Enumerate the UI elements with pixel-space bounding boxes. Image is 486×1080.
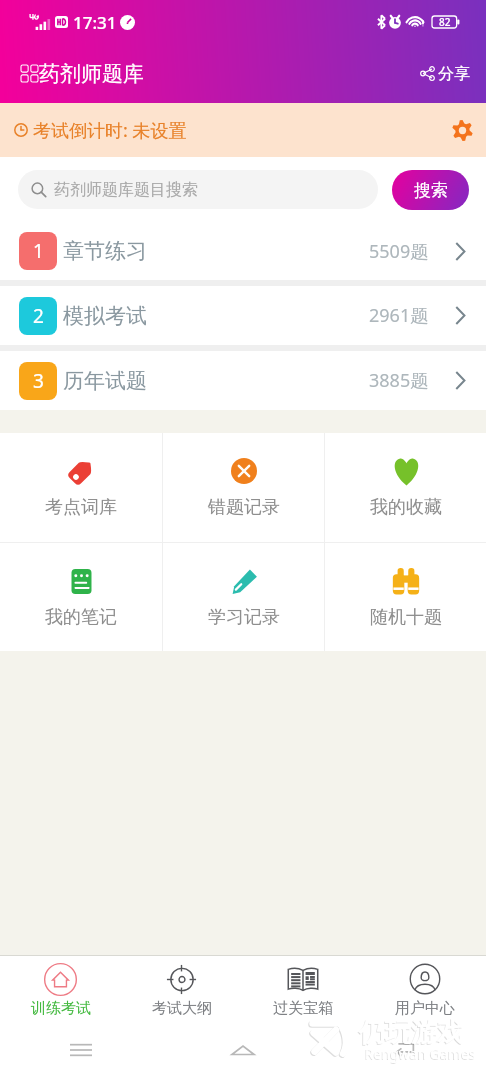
button[interactable]: 过关宝箱 bbox=[242, 956, 364, 1020]
staticText: 章节练习 bbox=[63, 238, 147, 264]
button[interactable]: Recents bbox=[0, 1020, 162, 1080]
button[interactable]: 搜索 bbox=[392, 170, 469, 210]
staticText: 考试倒计时: 未设置 bbox=[33, 118, 187, 143]
staticText: 模拟考试 bbox=[63, 303, 147, 329]
staticText: 我的收藏 bbox=[370, 496, 442, 519]
staticText: 历年试题 bbox=[63, 368, 147, 394]
staticText: 3885题 bbox=[369, 368, 429, 393]
button[interactable]: 错题记录 bbox=[163, 433, 324, 542]
staticText: 17:31 bbox=[73, 11, 117, 34]
staticText: 仍玩游戏 bbox=[359, 1016, 463, 1049]
staticText: 学习记录 bbox=[208, 606, 280, 629]
staticText: Rengwan Games bbox=[365, 1044, 476, 1063]
button[interactable]: 2 bbox=[0, 286, 486, 345]
staticText: 训练考试 bbox=[31, 999, 91, 1018]
button[interactable]: 考点词库 bbox=[0, 433, 162, 542]
staticText: 分享 bbox=[438, 64, 470, 84]
staticText: 随机十题 bbox=[370, 606, 442, 629]
button[interactable]: 我的笔记 bbox=[0, 543, 162, 651]
staticText: 2 bbox=[33, 303, 44, 329]
staticText: 考点词库 bbox=[45, 496, 117, 519]
button[interactable]: Countdown settings bbox=[439, 107, 485, 153]
button[interactable]: Home bbox=[162, 1020, 324, 1080]
staticText: 药剂师题库题目搜索 bbox=[54, 180, 198, 200]
staticText: 搜索 bbox=[414, 180, 448, 201]
button[interactable]: 随机十题 bbox=[325, 543, 486, 651]
button[interactable]: 我的收藏 bbox=[325, 433, 486, 542]
staticText: 过关宝箱 bbox=[273, 999, 333, 1018]
button[interactable]: 1 bbox=[0, 222, 486, 280]
button[interactable]: 3 bbox=[0, 351, 486, 410]
button[interactable]: 考试大纲 bbox=[121, 956, 242, 1020]
staticText: 2961题 bbox=[369, 303, 429, 328]
button[interactable]: Back bbox=[324, 1020, 486, 1080]
staticText: 仍玩游戏 bbox=[358, 1017, 462, 1050]
staticText: 我的笔记 bbox=[45, 606, 117, 629]
staticText: 用户中心 bbox=[395, 999, 455, 1018]
staticText: 药剂师题库 bbox=[39, 61, 144, 87]
button[interactable]: 学习记录 bbox=[163, 543, 324, 651]
staticText: 错题记录 bbox=[208, 496, 280, 519]
staticText: 3 bbox=[33, 368, 44, 394]
button[interactable]: 训练考试 bbox=[0, 956, 121, 1020]
button[interactable]: 药剂师题库题目搜索 bbox=[18, 170, 378, 209]
staticText: Rengwan Games bbox=[364, 1045, 475, 1064]
button[interactable]: 分享 bbox=[404, 44, 486, 103]
staticText: 5509题 bbox=[369, 239, 429, 264]
staticText: 考试大纲 bbox=[152, 999, 212, 1018]
staticText: 82 bbox=[439, 15, 451, 27]
button[interactable]: 用户中心 bbox=[364, 956, 486, 1020]
button[interactable]: 考试倒计时: 未设置 bbox=[0, 103, 486, 157]
staticText: 1 bbox=[33, 238, 44, 264]
